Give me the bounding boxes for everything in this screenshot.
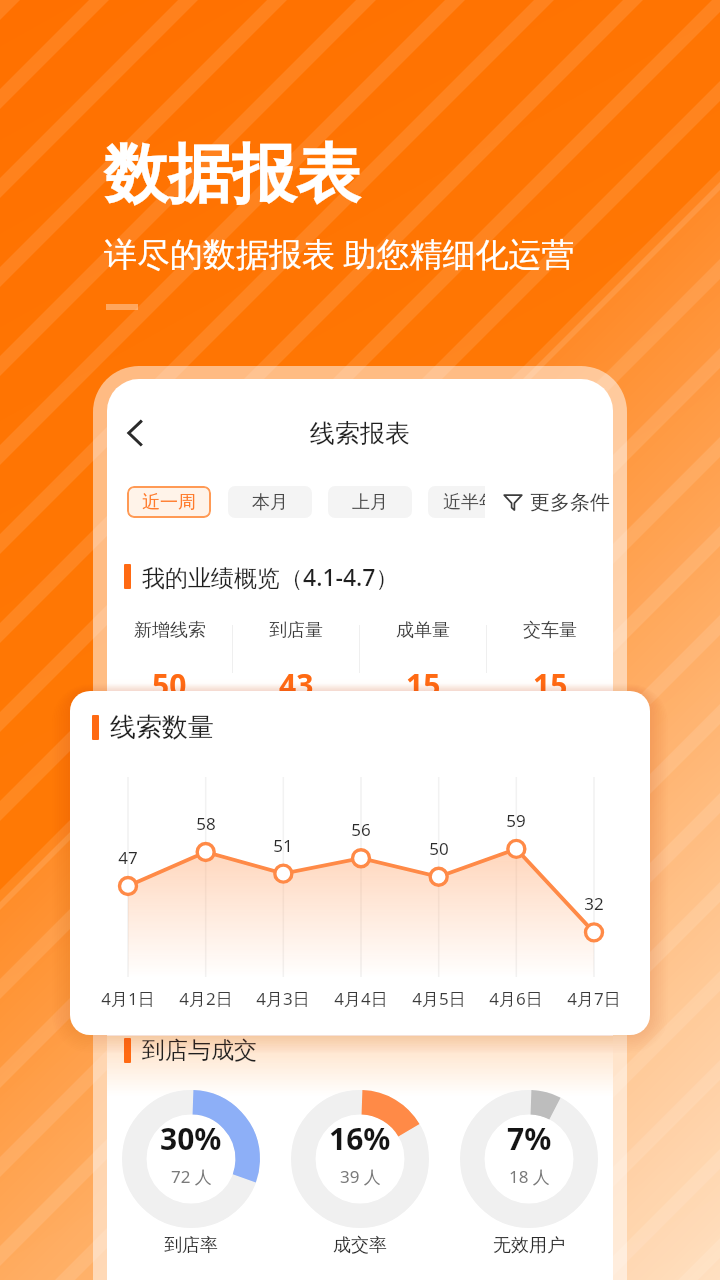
staticText: 详尽的数据报表 助您精细化运营 [104, 231, 575, 276]
staticText: 72 人 [171, 1165, 212, 1188]
button[interactable]: Back [112, 411, 156, 455]
staticText: 15 [406, 664, 441, 705]
staticText: 线索报表 [310, 418, 410, 449]
staticText: 更多条件 [530, 490, 610, 515]
staticText: 15 [533, 664, 568, 705]
staticText: 58 [176, 812, 236, 835]
staticText: 7% [507, 1118, 552, 1159]
staticText: 4月1日 [83, 987, 173, 1010]
button[interactable]: 上月 [328, 486, 412, 518]
staticText: 成交率 [333, 1234, 387, 1257]
staticText: 新增线索 [134, 619, 206, 642]
staticText: 39 人 [340, 1165, 381, 1188]
button[interactable]: 更多条件 [499, 478, 613, 526]
staticText: 近一周 [142, 491, 196, 514]
staticText: 到店率 [164, 1234, 218, 1257]
staticText: 我的业绩概览（4.1-4.7） [142, 561, 399, 592]
staticText: 51 [253, 834, 313, 857]
staticText: 无效用户 [493, 1234, 565, 1257]
staticText: 18 人 [509, 1165, 550, 1188]
staticText: 4月3日 [238, 987, 328, 1010]
staticText: 50 [409, 837, 469, 860]
staticText: 4月7日 [549, 987, 639, 1010]
staticText: 43 [279, 664, 314, 705]
staticText: 数据报表 [104, 134, 360, 215]
staticText: 50 [152, 664, 187, 705]
staticText: 16% [329, 1118, 391, 1159]
staticText: 交车量 [523, 619, 577, 642]
staticText: 到店量 [269, 619, 323, 642]
staticText: 47 [98, 846, 158, 869]
staticText: 近半年 [443, 491, 497, 514]
staticText: 4月5日 [394, 987, 484, 1010]
button[interactable]: 本月 [228, 486, 312, 518]
staticText: 4月2日 [161, 987, 251, 1010]
staticText: 4月4日 [316, 987, 406, 1010]
staticText: 上月 [352, 491, 388, 514]
staticText: 56 [331, 818, 391, 841]
staticText: 到店与成交 [142, 1036, 257, 1065]
staticText: 成单量 [396, 619, 450, 642]
staticText: 32 [564, 892, 624, 915]
staticText: 线索数量 [110, 711, 214, 744]
staticText: 4月6日 [471, 987, 561, 1010]
staticText: 本月 [252, 491, 288, 514]
staticText: 30% [160, 1118, 222, 1159]
staticText: 59 [486, 809, 546, 832]
button[interactable]: 近半年 [428, 486, 512, 518]
button[interactable]: 近一周 [127, 486, 211, 518]
